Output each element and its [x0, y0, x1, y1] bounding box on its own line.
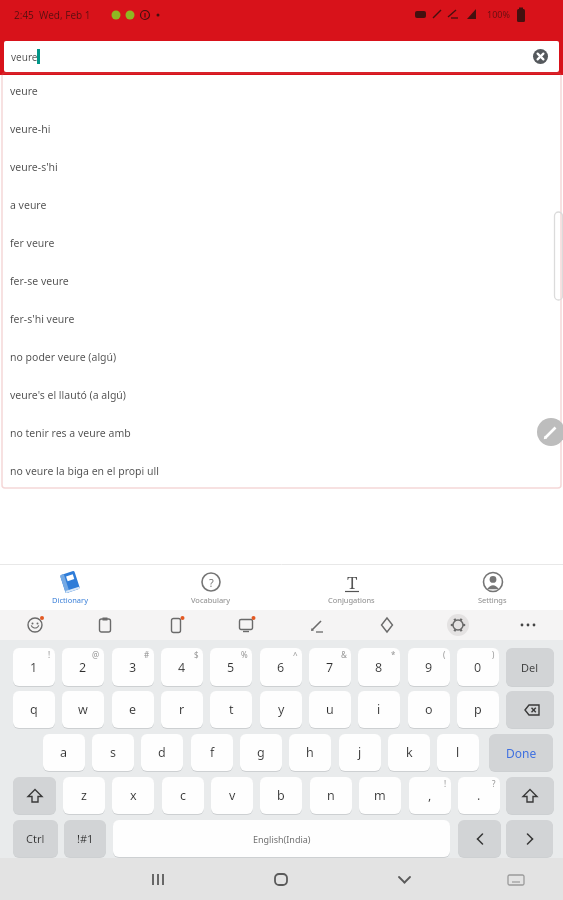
button[interactable]: x [112, 777, 154, 814]
button[interactable]: veure's el llautó (a algú) [0, 376, 563, 414]
button[interactable] [533, 49, 548, 64]
staticText: ^ [293, 649, 298, 660]
staticText: Vocabulary [191, 595, 231, 605]
button[interactable]: t [210, 691, 252, 728]
button[interactable] [162, 611, 190, 639]
button[interactable]: b [260, 777, 302, 814]
button[interactable]: fer veure [0, 224, 563, 262]
button[interactable]: Done [489, 734, 553, 771]
staticText: Ctrl [26, 831, 45, 846]
button[interactable]: h [289, 734, 331, 771]
staticText: z [81, 787, 87, 804]
staticText: T [347, 571, 358, 593]
button[interactable] [506, 691, 554, 728]
button[interactable]: f [191, 734, 233, 771]
button[interactable]: veure [0, 72, 563, 110]
staticText: b [277, 787, 285, 804]
button[interactable]: no tenir res a veure amb [0, 414, 563, 452]
button[interactable] [458, 820, 501, 857]
button[interactable] [444, 611, 472, 639]
button[interactable]: 3 [112, 648, 154, 686]
button[interactable]: T [281, 565, 422, 610]
button[interactable]: no veure la biga en el propi ull [0, 452, 563, 490]
button[interactable]: d [141, 734, 183, 771]
button[interactable] [303, 611, 331, 639]
button[interactable]: 5 [210, 648, 252, 686]
button[interactable] [506, 777, 554, 814]
staticText: @ [92, 649, 100, 660]
staticText: f [210, 744, 215, 761]
staticText: 5 [227, 659, 235, 676]
button[interactable]: g [240, 734, 282, 771]
button[interactable]: Settings [422, 565, 563, 610]
staticText: ! [444, 778, 447, 789]
button[interactable] [13, 777, 56, 814]
staticText: fer veure [10, 236, 55, 250]
button[interactable]: j [339, 734, 381, 771]
button[interactable]: veure [4, 41, 559, 72]
button[interactable]: s [92, 734, 134, 771]
button[interactable]: c [162, 777, 204, 814]
button[interactable]: 6 [260, 648, 302, 686]
button[interactable] [21, 611, 49, 639]
button[interactable] [506, 820, 553, 857]
button[interactable]: 0 [457, 648, 499, 686]
button[interactable]: u [309, 691, 351, 728]
staticText: v [229, 787, 236, 804]
button[interactable]: fer-s'hi veure [0, 300, 563, 338]
button[interactable]: a veure [0, 186, 563, 224]
button[interactable] [498, 860, 534, 898]
button[interactable]: Ctrl [13, 820, 58, 857]
staticText: x [130, 787, 137, 804]
button[interactable]: veure-s'hi [0, 148, 563, 186]
button[interactable]: k [388, 734, 430, 771]
button[interactable]: Del [506, 648, 554, 686]
button[interactable]: 2 [62, 648, 104, 686]
button[interactable] [537, 418, 563, 446]
staticText: $ [194, 649, 199, 660]
button[interactable] [232, 611, 260, 639]
button[interactable]: a [43, 734, 85, 771]
button[interactable]: Dictionary [0, 565, 140, 610]
button[interactable]: r [161, 691, 203, 728]
button[interactable]: no poder veure (algú) [0, 338, 563, 376]
button[interactable]: , [409, 777, 451, 814]
button[interactable]: w [62, 691, 104, 728]
button[interactable]: 8 [358, 648, 400, 686]
button[interactable]: ? [140, 565, 281, 610]
staticText: no poder veure (algú) [10, 350, 117, 364]
button[interactable]: . [458, 777, 500, 814]
button[interactable]: o [408, 691, 450, 728]
button[interactable]: !#1 [64, 820, 106, 857]
button[interactable] [140, 860, 176, 898]
button[interactable]: fer-se veure [0, 262, 563, 300]
staticText: 9 [425, 659, 433, 676]
button[interactable] [373, 611, 401, 639]
button[interactable]: l [437, 734, 479, 771]
staticText: j [358, 744, 362, 761]
button[interactable]: 7 [309, 648, 351, 686]
button[interactable]: q [13, 691, 55, 728]
staticText: ? [209, 575, 214, 590]
button[interactable] [263, 860, 299, 898]
staticText: t [229, 701, 234, 718]
button[interactable]: 9 [408, 648, 450, 686]
button[interactable]: n [310, 777, 352, 814]
button[interactable] [514, 611, 542, 639]
button[interactable] [91, 611, 119, 639]
staticText: y [278, 701, 285, 718]
button[interactable]: 1 [13, 648, 55, 686]
button[interactable]: p [457, 691, 499, 728]
button[interactable]: z [63, 777, 105, 814]
staticText: l [456, 744, 460, 761]
staticText: o [425, 701, 433, 718]
button[interactable]: 4 [161, 648, 203, 686]
button[interactable]: e [112, 691, 154, 728]
button[interactable]: y [260, 691, 302, 728]
button[interactable]: English(India) [113, 820, 450, 857]
button[interactable] [386, 860, 422, 898]
button[interactable]: i [358, 691, 400, 728]
button[interactable]: m [359, 777, 401, 814]
button[interactable]: veure-hi [0, 110, 563, 148]
button[interactable]: v [211, 777, 253, 814]
